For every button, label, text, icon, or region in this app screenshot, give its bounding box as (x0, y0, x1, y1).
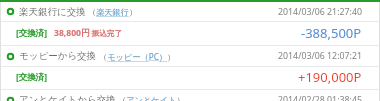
other: Exchange entry (6, 7, 15, 16)
staticText: アンとケイトから交換 (19, 94, 116, 101)
button[interactable]: [交換済] (1, 22, 379, 43)
staticText: （楽天銀行） (88, 7, 138, 17)
staticText: [交換済] (16, 27, 48, 39)
staticText: （モッピー（PC）） (99, 51, 176, 62)
button[interactable]: [交換済] (1, 67, 379, 87)
staticText: [交換済] (16, 71, 48, 83)
staticText: 2014/03/06 12:07:21 (278, 50, 362, 62)
staticText: +190,000P (298, 68, 362, 86)
staticText: 2014/02/28 01:38:45 (278, 94, 362, 101)
staticText: 38,800円 振込完了 (54, 27, 122, 39)
staticText: 楽天銀行に交換 (19, 6, 86, 18)
other: Exchange entry (6, 96, 15, 101)
button[interactable]: Exchange entry (1, 2, 379, 21)
button[interactable]: Exchange entry (1, 46, 379, 66)
staticText: -388,500P (301, 24, 362, 42)
other: Exchange entry (6, 52, 15, 61)
button[interactable]: Exchange entry (1, 90, 379, 101)
staticText: 2014/03/06 21:27:40 (278, 6, 362, 18)
staticText: （アンとケイト） (118, 95, 185, 101)
staticText: モッピーから交換 (19, 50, 97, 62)
